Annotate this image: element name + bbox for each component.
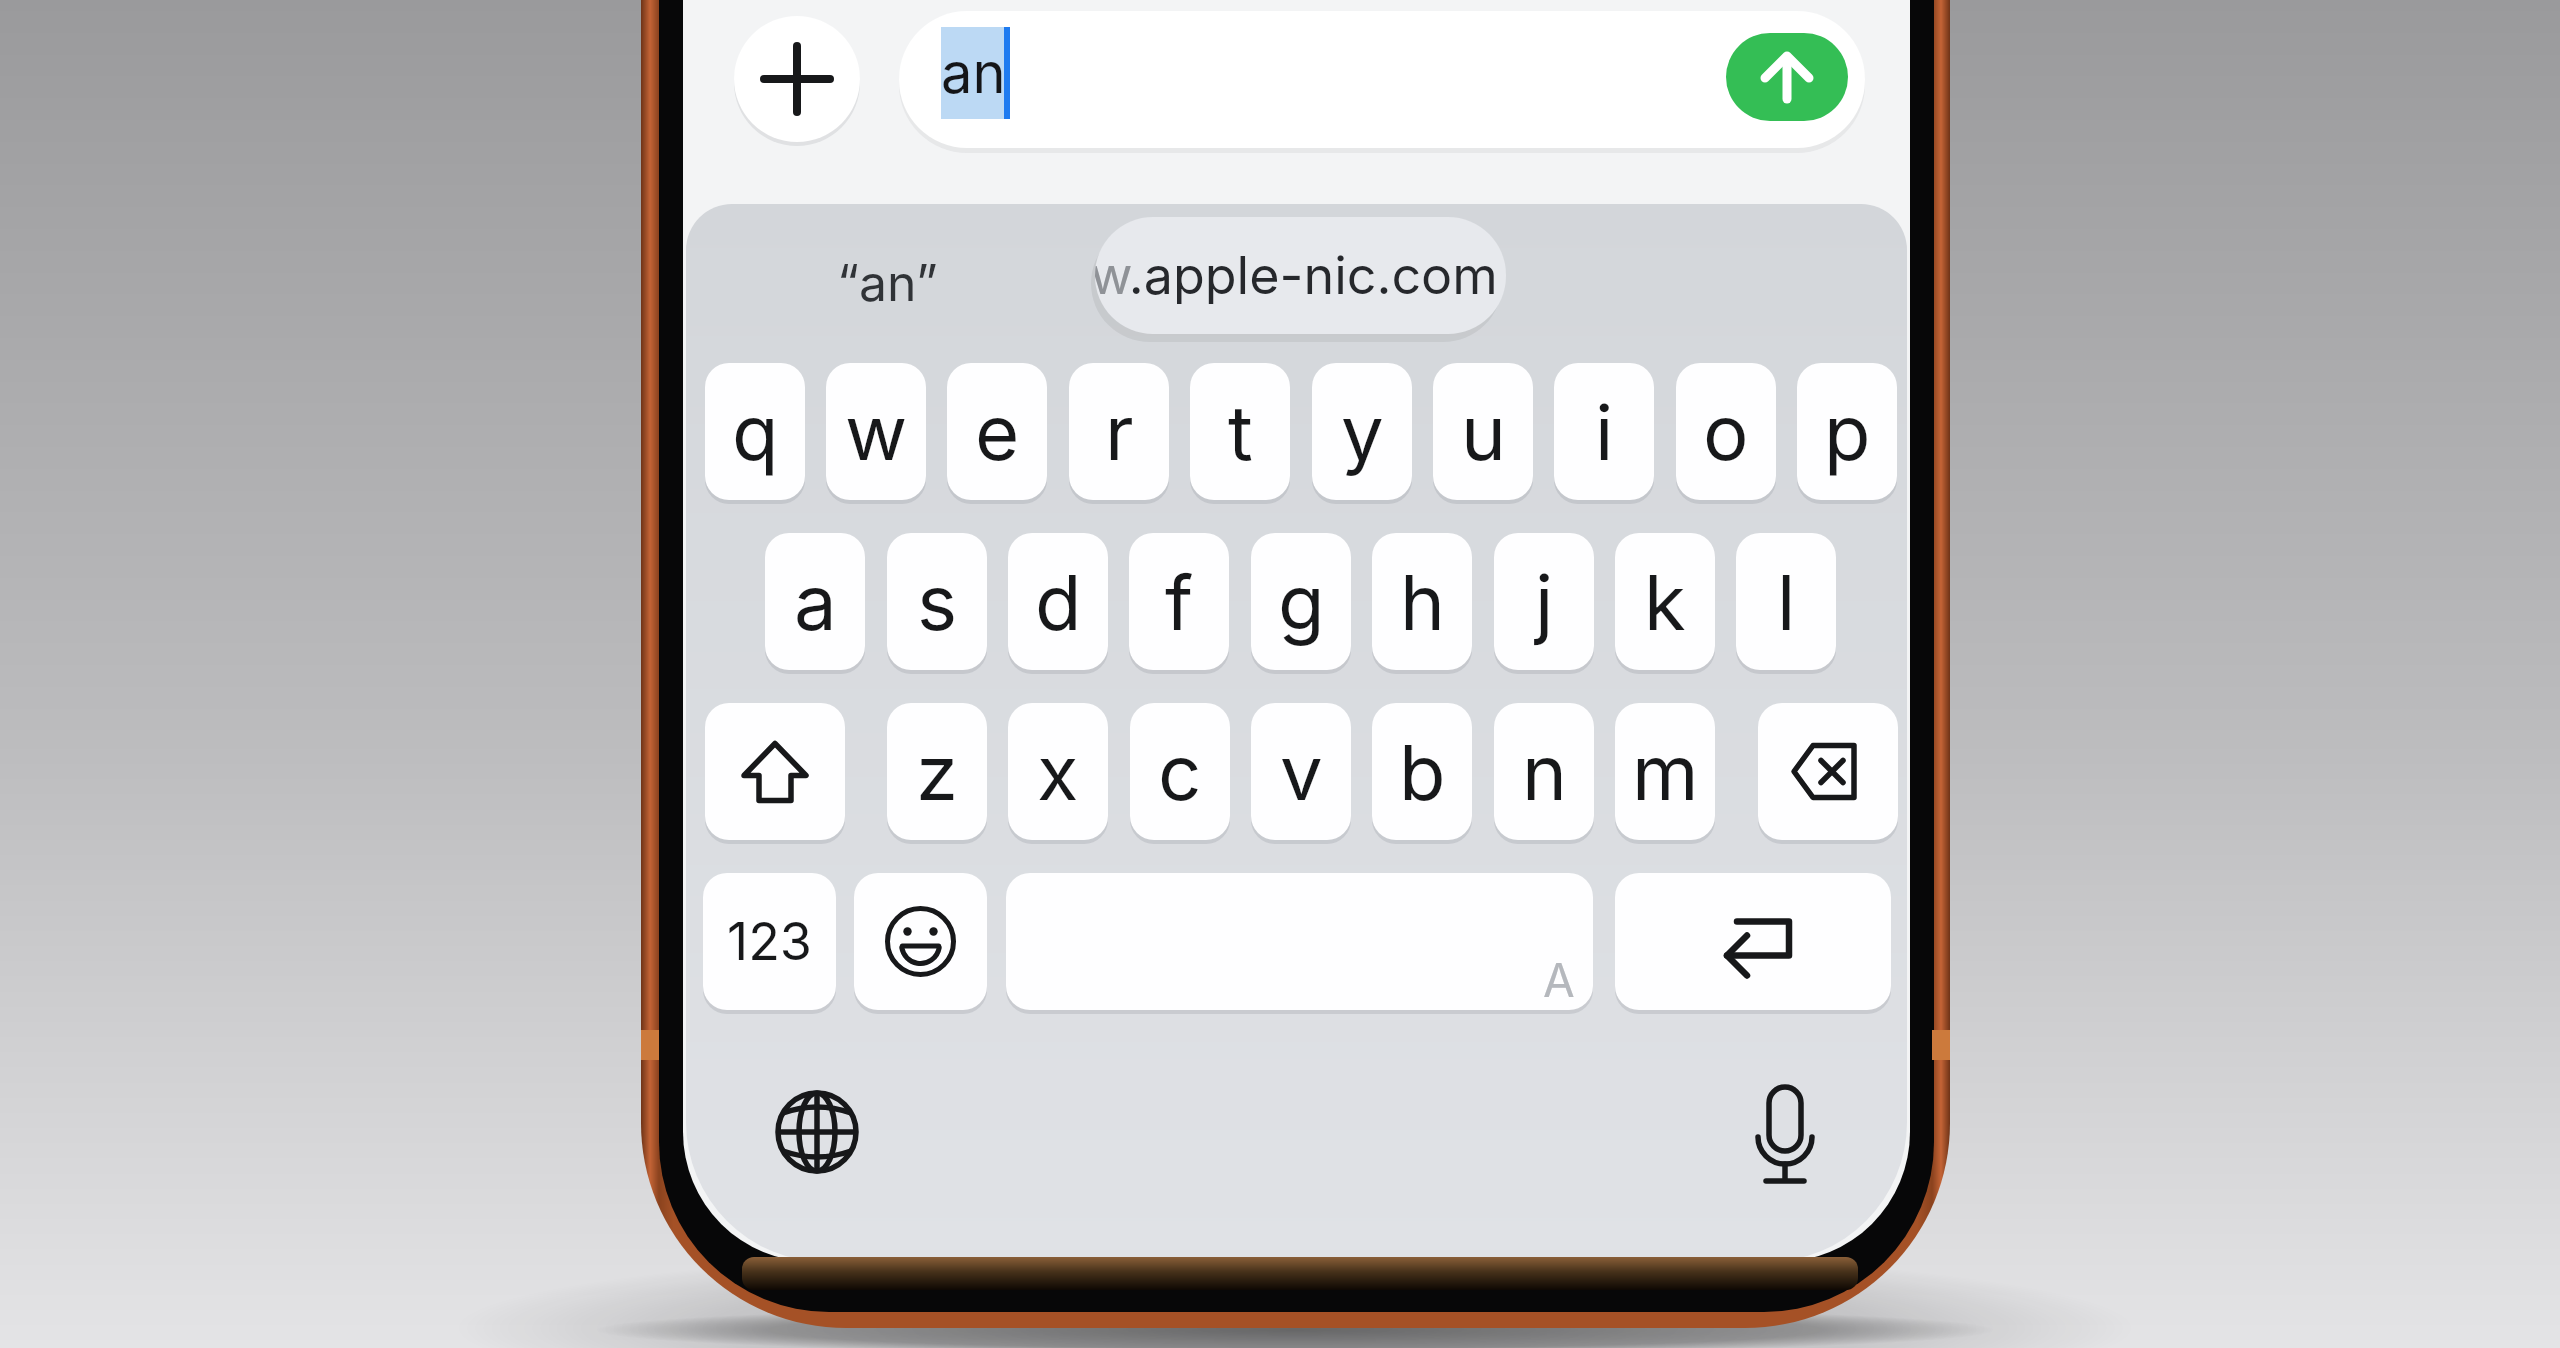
staticText: A	[1543, 952, 1575, 1008]
button[interactable]: e	[947, 363, 1047, 500]
button[interactable]: m	[1615, 703, 1715, 840]
staticText: w.apple-nic.com	[1095, 244, 1498, 307]
button[interactable]: j	[1494, 533, 1594, 670]
button[interactable]: p	[1797, 363, 1897, 500]
staticText: “an”	[837, 253, 938, 313]
button[interactable]	[705, 703, 845, 840]
button[interactable]: l	[1736, 533, 1836, 670]
staticText: x	[1037, 726, 1079, 818]
button[interactable]	[771, 1086, 863, 1178]
button[interactable]: q	[705, 363, 805, 500]
staticText: f	[1165, 556, 1194, 648]
button[interactable]: y	[1312, 363, 1412, 500]
button[interactable]: an	[899, 11, 1865, 148]
button[interactable]: r	[1069, 363, 1169, 500]
button[interactable]	[734, 16, 860, 142]
staticText: i	[1595, 386, 1614, 478]
staticText: p	[1824, 386, 1871, 478]
staticText: j	[1535, 556, 1554, 648]
button[interactable]: d	[1008, 533, 1108, 670]
staticText: o	[1703, 386, 1749, 478]
staticText: c	[1158, 726, 1202, 818]
button[interactable]: b	[1372, 703, 1472, 840]
staticText: k	[1644, 556, 1686, 648]
button[interactable]: a	[765, 533, 865, 670]
button[interactable]: h	[1372, 533, 1472, 670]
staticText: 123	[727, 910, 812, 973]
staticText: l	[1777, 556, 1796, 648]
staticText: d	[1035, 556, 1082, 648]
button[interactable]: i	[1554, 363, 1654, 500]
staticText: y	[1341, 386, 1384, 478]
button[interactable]: z	[887, 703, 987, 840]
button[interactable]: v	[1251, 703, 1351, 840]
button[interactable]	[1738, 1080, 1832, 1190]
button[interactable]: g	[1251, 533, 1351, 670]
staticText: b	[1399, 726, 1446, 818]
button[interactable]	[854, 873, 987, 1010]
staticText: t	[1228, 386, 1253, 478]
button[interactable]: “an”	[790, 234, 984, 332]
staticText: e	[975, 386, 1020, 478]
button[interactable]: w	[826, 363, 926, 500]
staticText: g	[1278, 556, 1325, 648]
staticText: m	[1632, 726, 1699, 818]
staticText: w	[845, 386, 908, 478]
button[interactable]: u	[1433, 363, 1533, 500]
staticText: z	[916, 726, 958, 818]
button[interactable]: 123	[703, 873, 836, 1010]
staticText: an	[941, 39, 1004, 107]
button[interactable]: t	[1190, 363, 1290, 500]
button[interactable]: f	[1129, 533, 1229, 670]
button[interactable]: c	[1130, 703, 1230, 840]
button[interactable]	[1615, 873, 1891, 1010]
staticText: q	[732, 386, 779, 478]
button[interactable]: x	[1008, 703, 1108, 840]
button[interactable]	[1726, 33, 1848, 121]
staticText: h	[1400, 556, 1445, 648]
staticText: v	[1280, 726, 1323, 818]
button[interactable]: w.apple-nic.com	[1095, 217, 1506, 334]
staticText: a	[794, 556, 837, 648]
button[interactable]: s	[887, 533, 987, 670]
button[interactable]: n	[1494, 703, 1594, 840]
button[interactable]: o	[1676, 363, 1776, 500]
button[interactable]	[1758, 703, 1898, 840]
staticText: r	[1105, 386, 1134, 478]
button[interactable]: A	[1006, 873, 1593, 1010]
button[interactable]: k	[1615, 533, 1715, 670]
staticText: s	[917, 556, 958, 648]
staticText: n	[1522, 726, 1567, 818]
staticText: u	[1461, 386, 1506, 478]
